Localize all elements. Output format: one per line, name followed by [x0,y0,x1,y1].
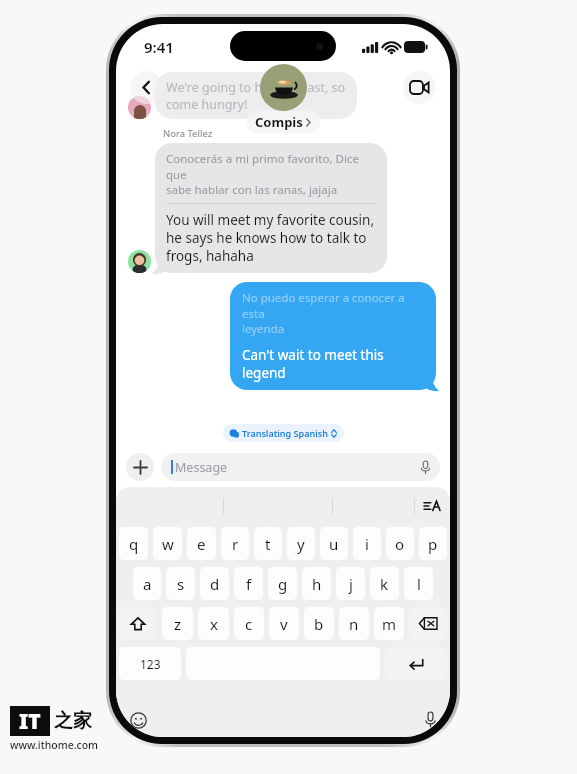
button[interactable]: x [198,607,229,640]
staticText: Nora Tellez [163,127,213,140]
other: Dictate [421,461,430,474]
staticText: s [177,574,185,594]
staticText: Translating Spanish [242,427,328,439]
staticText: d [210,574,220,594]
staticText: w [162,534,174,554]
staticText: p [428,534,438,554]
button[interactable]: l [404,567,433,600]
staticText: u [329,534,339,554]
staticText: l [417,574,421,594]
button[interactable]: Translating Spanish [223,424,344,442]
button[interactable]: Back [130,71,163,104]
staticText: 123 [140,656,161,672]
staticText: 9:41 [144,37,174,57]
staticText: Can't wait to meet this legend [242,346,424,382]
staticText: z [174,614,182,634]
button[interactable]: w [153,527,182,560]
button[interactable]: d [200,567,229,600]
button[interactable]: k [370,567,399,600]
button[interactable]: y [287,527,315,560]
button[interactable]: FaceTime video call [403,71,436,104]
staticText: We're going to have a feast, so come hun… [166,79,346,112]
staticText: a [143,574,152,594]
button[interactable]: s [166,567,195,600]
button[interactable]: Emoji [130,712,147,729]
button[interactable]: Add attachment [126,453,154,481]
button[interactable]: q [119,527,148,560]
button[interactable]: h [302,567,331,600]
staticText: h [312,574,322,594]
staticText: www.ithome.com [10,738,99,752]
staticText: y [297,534,305,554]
staticText: n [349,614,359,634]
staticText: Message [175,459,228,476]
button[interactable]: n [339,607,369,640]
staticText: m [382,614,397,634]
staticText: f [246,574,252,594]
staticText: v [280,614,288,634]
button[interactable]: z [162,607,193,640]
staticText: IT [19,707,41,736]
button[interactable]: g [268,567,297,600]
button[interactable]: b [304,607,334,640]
staticText: x [210,614,218,634]
button[interactable]: u [320,527,348,560]
staticText: Conocerás a mi primo favorito, Dice que … [166,151,376,197]
button[interactable]: p [419,527,447,560]
staticText: Compis [255,113,303,131]
button[interactable]: Return [385,647,447,680]
staticText: c [245,614,253,634]
staticText: g [278,574,288,594]
staticText: k [380,574,389,594]
button[interactable]: t [254,527,282,560]
button[interactable]: Compis [246,111,320,133]
staticText: i [365,534,369,554]
staticText: j [349,574,353,594]
button[interactable]: o [386,527,414,560]
button[interactable]: m [374,607,404,640]
staticText: No puedo esperar a conocer a esta leyend… [242,290,424,336]
button[interactable]: r [221,527,249,560]
button[interactable]: Dictation [425,712,436,728]
button[interactable]: Shift [119,607,157,640]
staticText: 之家 [54,709,92,733]
button[interactable]: Backspace [409,607,447,640]
staticText: r [232,534,239,554]
button[interactable]: c [234,607,264,640]
button[interactable]: Text formatting [424,498,440,514]
staticText: You will meet my favorite cousin, he say… [166,211,375,265]
button[interactable]: e [187,527,216,560]
button[interactable]: Message [161,453,440,481]
button[interactable]: 123 [119,647,181,680]
button[interactable]: i [353,527,381,560]
staticText: o [395,534,405,554]
button[interactable]: j [336,567,365,600]
staticText: e [197,534,206,554]
button[interactable]: v [269,607,299,640]
button[interactable]: a [133,567,161,600]
staticText: b [314,614,324,634]
button[interactable]: f [234,567,263,600]
staticText: t [265,534,271,554]
staticText: q [129,534,139,554]
